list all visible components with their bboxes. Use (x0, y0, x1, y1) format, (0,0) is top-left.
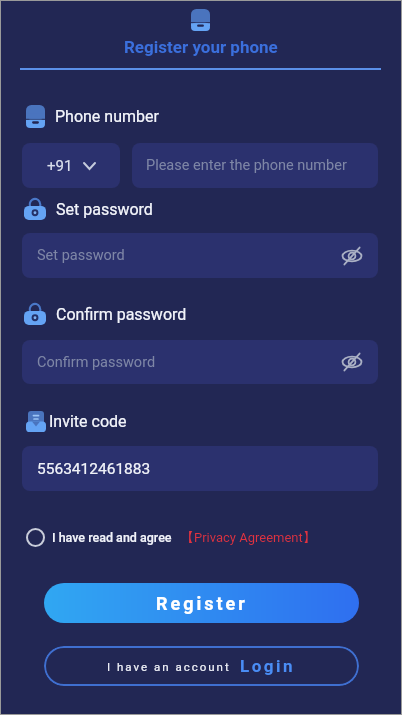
staticText: I have an account (107, 660, 231, 673)
button[interactable]: Register (44, 583, 359, 623)
staticText: Phone number (55, 107, 159, 126)
button[interactable]: I have an account (44, 646, 359, 686)
button[interactable] (342, 353, 362, 371)
staticText: +91 (47, 157, 73, 175)
staticText: Register (156, 593, 248, 614)
staticText: 5563412461883 (37, 460, 151, 478)
staticText: Login (240, 656, 296, 676)
staticText: Set password (37, 247, 125, 264)
staticText: Please enter the phone number (146, 157, 347, 174)
staticText: Register your phone (124, 37, 278, 57)
button[interactable]: Set password (22, 233, 378, 278)
staticText: 【Privacy Agreement】 (181, 529, 316, 545)
button[interactable] (342, 247, 362, 265)
staticText: Confirm password (37, 354, 156, 371)
staticText: Set password (56, 200, 153, 219)
staticText: Confirm password (56, 305, 187, 324)
staticText: I have read and agree (52, 530, 172, 545)
button[interactable]: +91 (22, 143, 120, 188)
staticText: Invite code (49, 412, 127, 431)
button[interactable]: Confirm password (22, 340, 378, 384)
button[interactable]: Please enter the phone number (132, 143, 378, 188)
button[interactable]: I have read and agree (26, 524, 316, 550)
button[interactable]: 5563412461883 (22, 446, 378, 491)
